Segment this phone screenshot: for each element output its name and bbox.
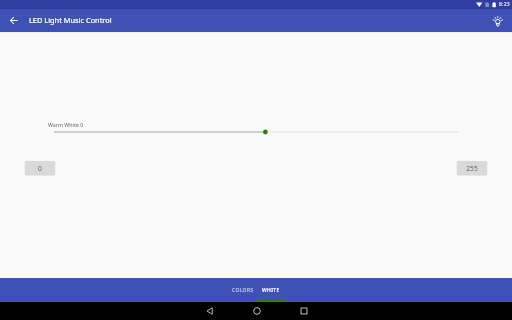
staticText: 255 <box>466 164 478 173</box>
button[interactable]: Back <box>186 302 233 320</box>
staticText: Warm White 0 <box>48 121 84 128</box>
button[interactable]: COLORS <box>229 278 257 302</box>
staticText: LED Light Music Control <box>29 15 112 25</box>
button[interactable]: Light mode <box>486 9 512 32</box>
staticText: 8:23 <box>499 1 510 8</box>
button[interactable]: WHITE <box>257 278 285 302</box>
button[interactable]: 0 <box>25 161 55 175</box>
button[interactable]: Navigate up <box>0 9 27 32</box>
staticText: 0 <box>38 164 42 173</box>
button[interactable]: Recents <box>280 302 327 320</box>
button[interactable]: Home <box>233 302 280 320</box>
button[interactable]: 255 <box>457 161 487 175</box>
staticText: WHITE <box>262 287 280 294</box>
button[interactable]: Warm white level <box>50 126 463 138</box>
staticText: COLORS <box>232 287 254 294</box>
